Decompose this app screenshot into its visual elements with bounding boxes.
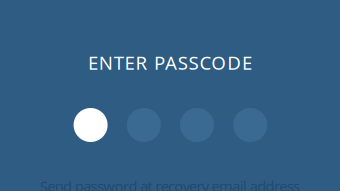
- button[interactable]: Send password at recovery email address: [40, 176, 300, 191]
- staticText: ENTER PASSCODE: [88, 50, 252, 75]
- staticText: Send password at recovery email address: [40, 176, 300, 191]
